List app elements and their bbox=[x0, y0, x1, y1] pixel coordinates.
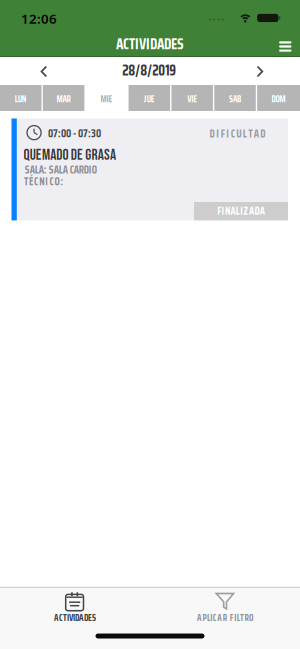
button[interactable]: VIE bbox=[171, 85, 213, 111]
button[interactable]: MAR bbox=[43, 85, 84, 111]
staticText: SALA: SALA CARDIO bbox=[25, 161, 97, 178]
staticText: 07:00 - 07:30 bbox=[48, 125, 101, 142]
staticText: DOM bbox=[272, 92, 286, 106]
button[interactable]: LUN bbox=[0, 85, 41, 111]
button[interactable]: Menu bbox=[274, 36, 296, 57]
button[interactable]: SAB bbox=[214, 85, 256, 111]
button[interactable]: APLICAR FILTRO bbox=[150, 588, 300, 635]
staticText: MIE bbox=[100, 92, 112, 106]
staticText: APLICAR FILTRO bbox=[197, 611, 254, 625]
staticText: ACTIVIDADES bbox=[54, 611, 96, 625]
button[interactable]: JUE bbox=[129, 85, 170, 111]
staticText: FINALIZADA bbox=[217, 203, 265, 219]
button[interactable]: Previous day bbox=[35, 62, 52, 80]
staticText: QUEMADO DE GRASA bbox=[23, 146, 116, 164]
button[interactable]: FINALIZADA bbox=[194, 202, 288, 220]
staticText: MAR bbox=[57, 92, 71, 106]
staticText: VIE bbox=[187, 92, 197, 106]
staticText: DIFICULTAD bbox=[210, 125, 265, 142]
button[interactable]: 07:00 - 07:30 bbox=[11, 118, 288, 220]
staticText: 12:06 bbox=[21, 10, 57, 27]
button[interactable]: Next day bbox=[251, 62, 268, 80]
button[interactable]: ACTIVIDADES bbox=[0, 588, 150, 635]
staticText: JUE bbox=[144, 92, 155, 106]
staticText: SAB bbox=[229, 92, 241, 106]
button[interactable]: MIE bbox=[86, 85, 127, 111]
staticText: TÉCNICO: bbox=[24, 173, 64, 190]
staticText: 28/8/2019 bbox=[122, 59, 176, 82]
button[interactable]: DOM bbox=[257, 85, 300, 111]
staticText: LUN bbox=[15, 92, 27, 106]
staticText: ACTIVIDADES bbox=[116, 32, 184, 56]
